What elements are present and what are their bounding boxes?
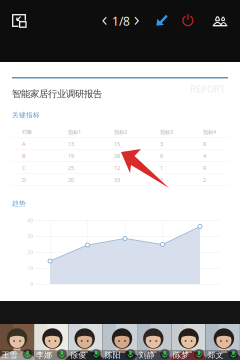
staticText: 李娜: [36, 350, 52, 360]
button[interactable]: Previous slide: [98, 10, 112, 32]
staticText: 指标3: [160, 128, 173, 136]
staticText: 6: [160, 152, 163, 160]
button[interactable]: 陈梦: [172, 324, 206, 360]
staticText: 徐俊: [70, 350, 86, 360]
staticText: 指标4: [203, 128, 216, 136]
button[interactable]: Minimise: [4, 7, 36, 35]
staticText: 10: [27, 265, 33, 272]
staticText: 7: [160, 176, 163, 184]
button[interactable]: Next slide: [130, 10, 144, 32]
button[interactable]: 李娜: [34, 324, 68, 360]
staticText: 郑文: [207, 350, 223, 360]
staticText: 对象: [22, 129, 32, 135]
button[interactable]: 刘静: [137, 324, 171, 360]
staticText: 9: [203, 164, 206, 172]
staticText: 陈梦: [173, 350, 189, 360]
staticText: 2: [203, 176, 206, 184]
staticText: 30: [27, 233, 33, 240]
button[interactable]: 王雪: [0, 324, 34, 360]
staticText: 陈阳: [104, 350, 120, 360]
staticText: 指标2: [114, 128, 127, 136]
staticText: 33: [114, 176, 120, 184]
button[interactable]: Laser pointer: [150, 8, 174, 32]
staticText: 12: [114, 164, 120, 172]
button[interactable]: Participants: [208, 8, 232, 32]
staticText: 20: [27, 249, 33, 256]
staticText: 28: [114, 152, 120, 160]
staticText: 王雪: [2, 350, 18, 360]
staticText: A: [22, 140, 25, 148]
staticText: B: [22, 152, 25, 160]
staticText: 0: [30, 280, 33, 288]
button[interactable]: Leave meeting: [176, 8, 200, 32]
staticText: 关键指标: [12, 111, 40, 119]
staticText: C: [22, 164, 25, 172]
staticText: 1/8: [112, 13, 130, 29]
staticText: 8: [203, 140, 206, 148]
staticText: 15: [114, 140, 120, 148]
staticText: 1: [160, 164, 163, 172]
button[interactable]: 陈阳: [103, 324, 137, 360]
staticText: 40: [27, 217, 33, 224]
staticText: 20: [68, 176, 74, 184]
staticText: REPORT: [190, 83, 225, 95]
staticText: 19: [68, 152, 74, 160]
staticText: 智能家居行业调研报告: [12, 88, 102, 100]
staticText: 13: [68, 140, 74, 148]
staticText: D: [22, 176, 26, 184]
staticText: 趋势: [12, 199, 26, 208]
staticText: 指标1: [68, 128, 81, 136]
staticText: 4: [203, 152, 206, 160]
staticText: 25: [68, 164, 74, 172]
staticText: 3: [160, 140, 163, 148]
staticText: 刘静: [139, 350, 155, 360]
button[interactable]: 徐俊: [69, 324, 103, 360]
button[interactable]: 郑文: [206, 324, 240, 360]
